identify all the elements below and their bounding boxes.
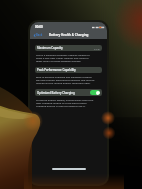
staticText: 00:00 <box>35 25 43 29</box>
button[interactable]: Optimized Battery Charging toggle <box>90 90 100 95</box>
staticText: Battery Health & Charging <box>49 33 89 37</box>
staticText: Peak Performance Capability <box>37 68 76 72</box>
staticText: Back <box>36 33 43 37</box>
button[interactable]: Peak Performance Capability <box>35 67 102 73</box>
button[interactable]: Back <box>30 32 45 38</box>
staticText: Maximum Capacity <box>37 46 63 50</box>
staticText: Built-in dynamic software and hardware s… <box>36 75 95 84</box>
button[interactable]: Maximum Capacity <box>35 45 102 51</box>
staticText: Optimized Battery Charging <box>37 91 75 95</box>
button[interactable]: Optimized Battery Charging <box>35 89 102 96</box>
staticText: To reduce battery ageing, iPhone learns … <box>36 98 94 107</box>
staticText: This is a measure of battery capacity re… <box>36 53 90 62</box>
staticText: 71 % <box>94 47 100 50</box>
